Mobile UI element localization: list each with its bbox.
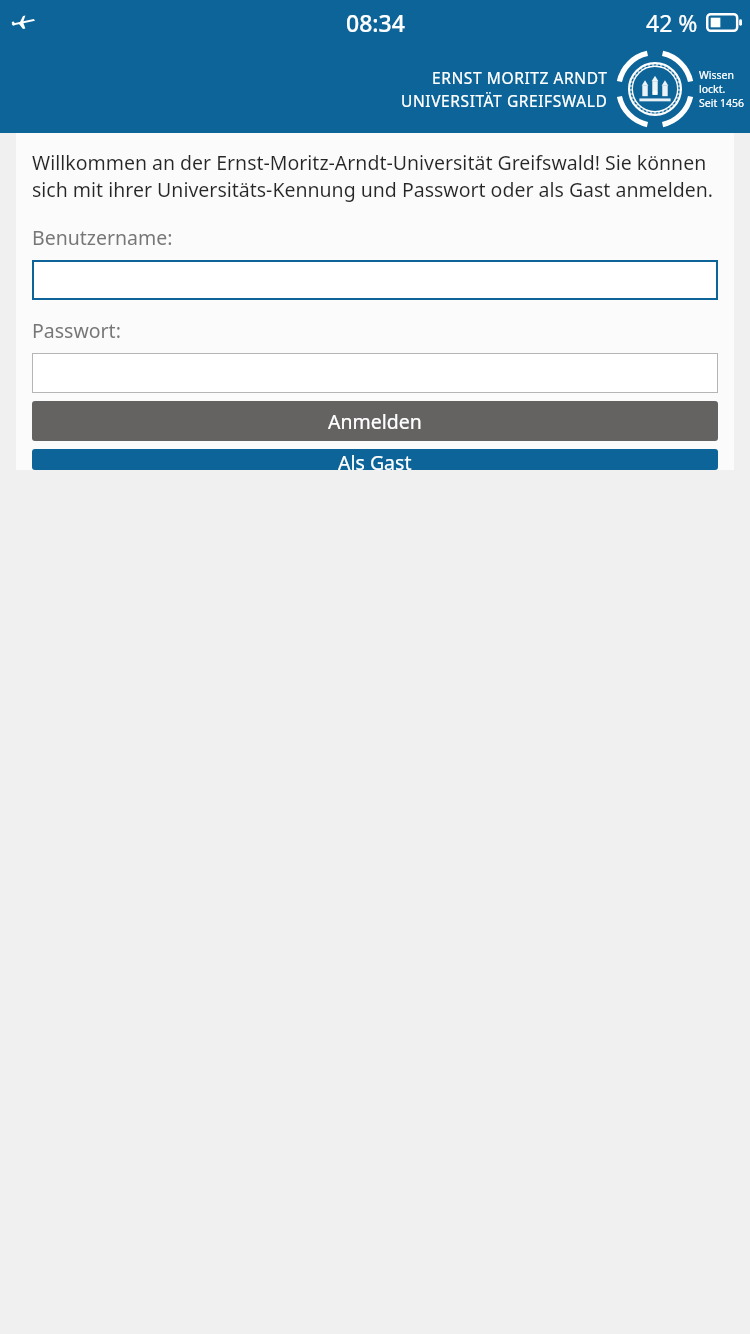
staticText: 42 % [646,7,698,38]
staticText: Willkommen an der Ernst-Moritz-Arndt-Uni… [32,149,718,203]
staticText: lockt. [699,82,726,96]
other: Airplane mode [8,7,38,37]
button[interactable]: Benutzername Eingabefeld [32,260,718,300]
button[interactable]: Als Gast [32,449,718,470]
staticText: Benutzername: [32,224,173,251]
button[interactable]: Passwort Eingabefeld [32,353,718,393]
staticText: Seit 1456 [699,96,744,110]
staticText: Anmelden [328,408,422,435]
button[interactable]: Anmelden [32,401,718,441]
staticText: Wissen [699,68,734,82]
staticText: 08:34 [346,7,405,38]
staticText: Passwort: [32,317,121,344]
other: Battery 42 percent [706,13,742,32]
staticText: Als Gast [338,449,412,470]
staticText: ERNST MORITZ ARNDT [432,67,608,88]
staticText: UNIVERSITÄT GREIFSWALD [401,90,608,111]
